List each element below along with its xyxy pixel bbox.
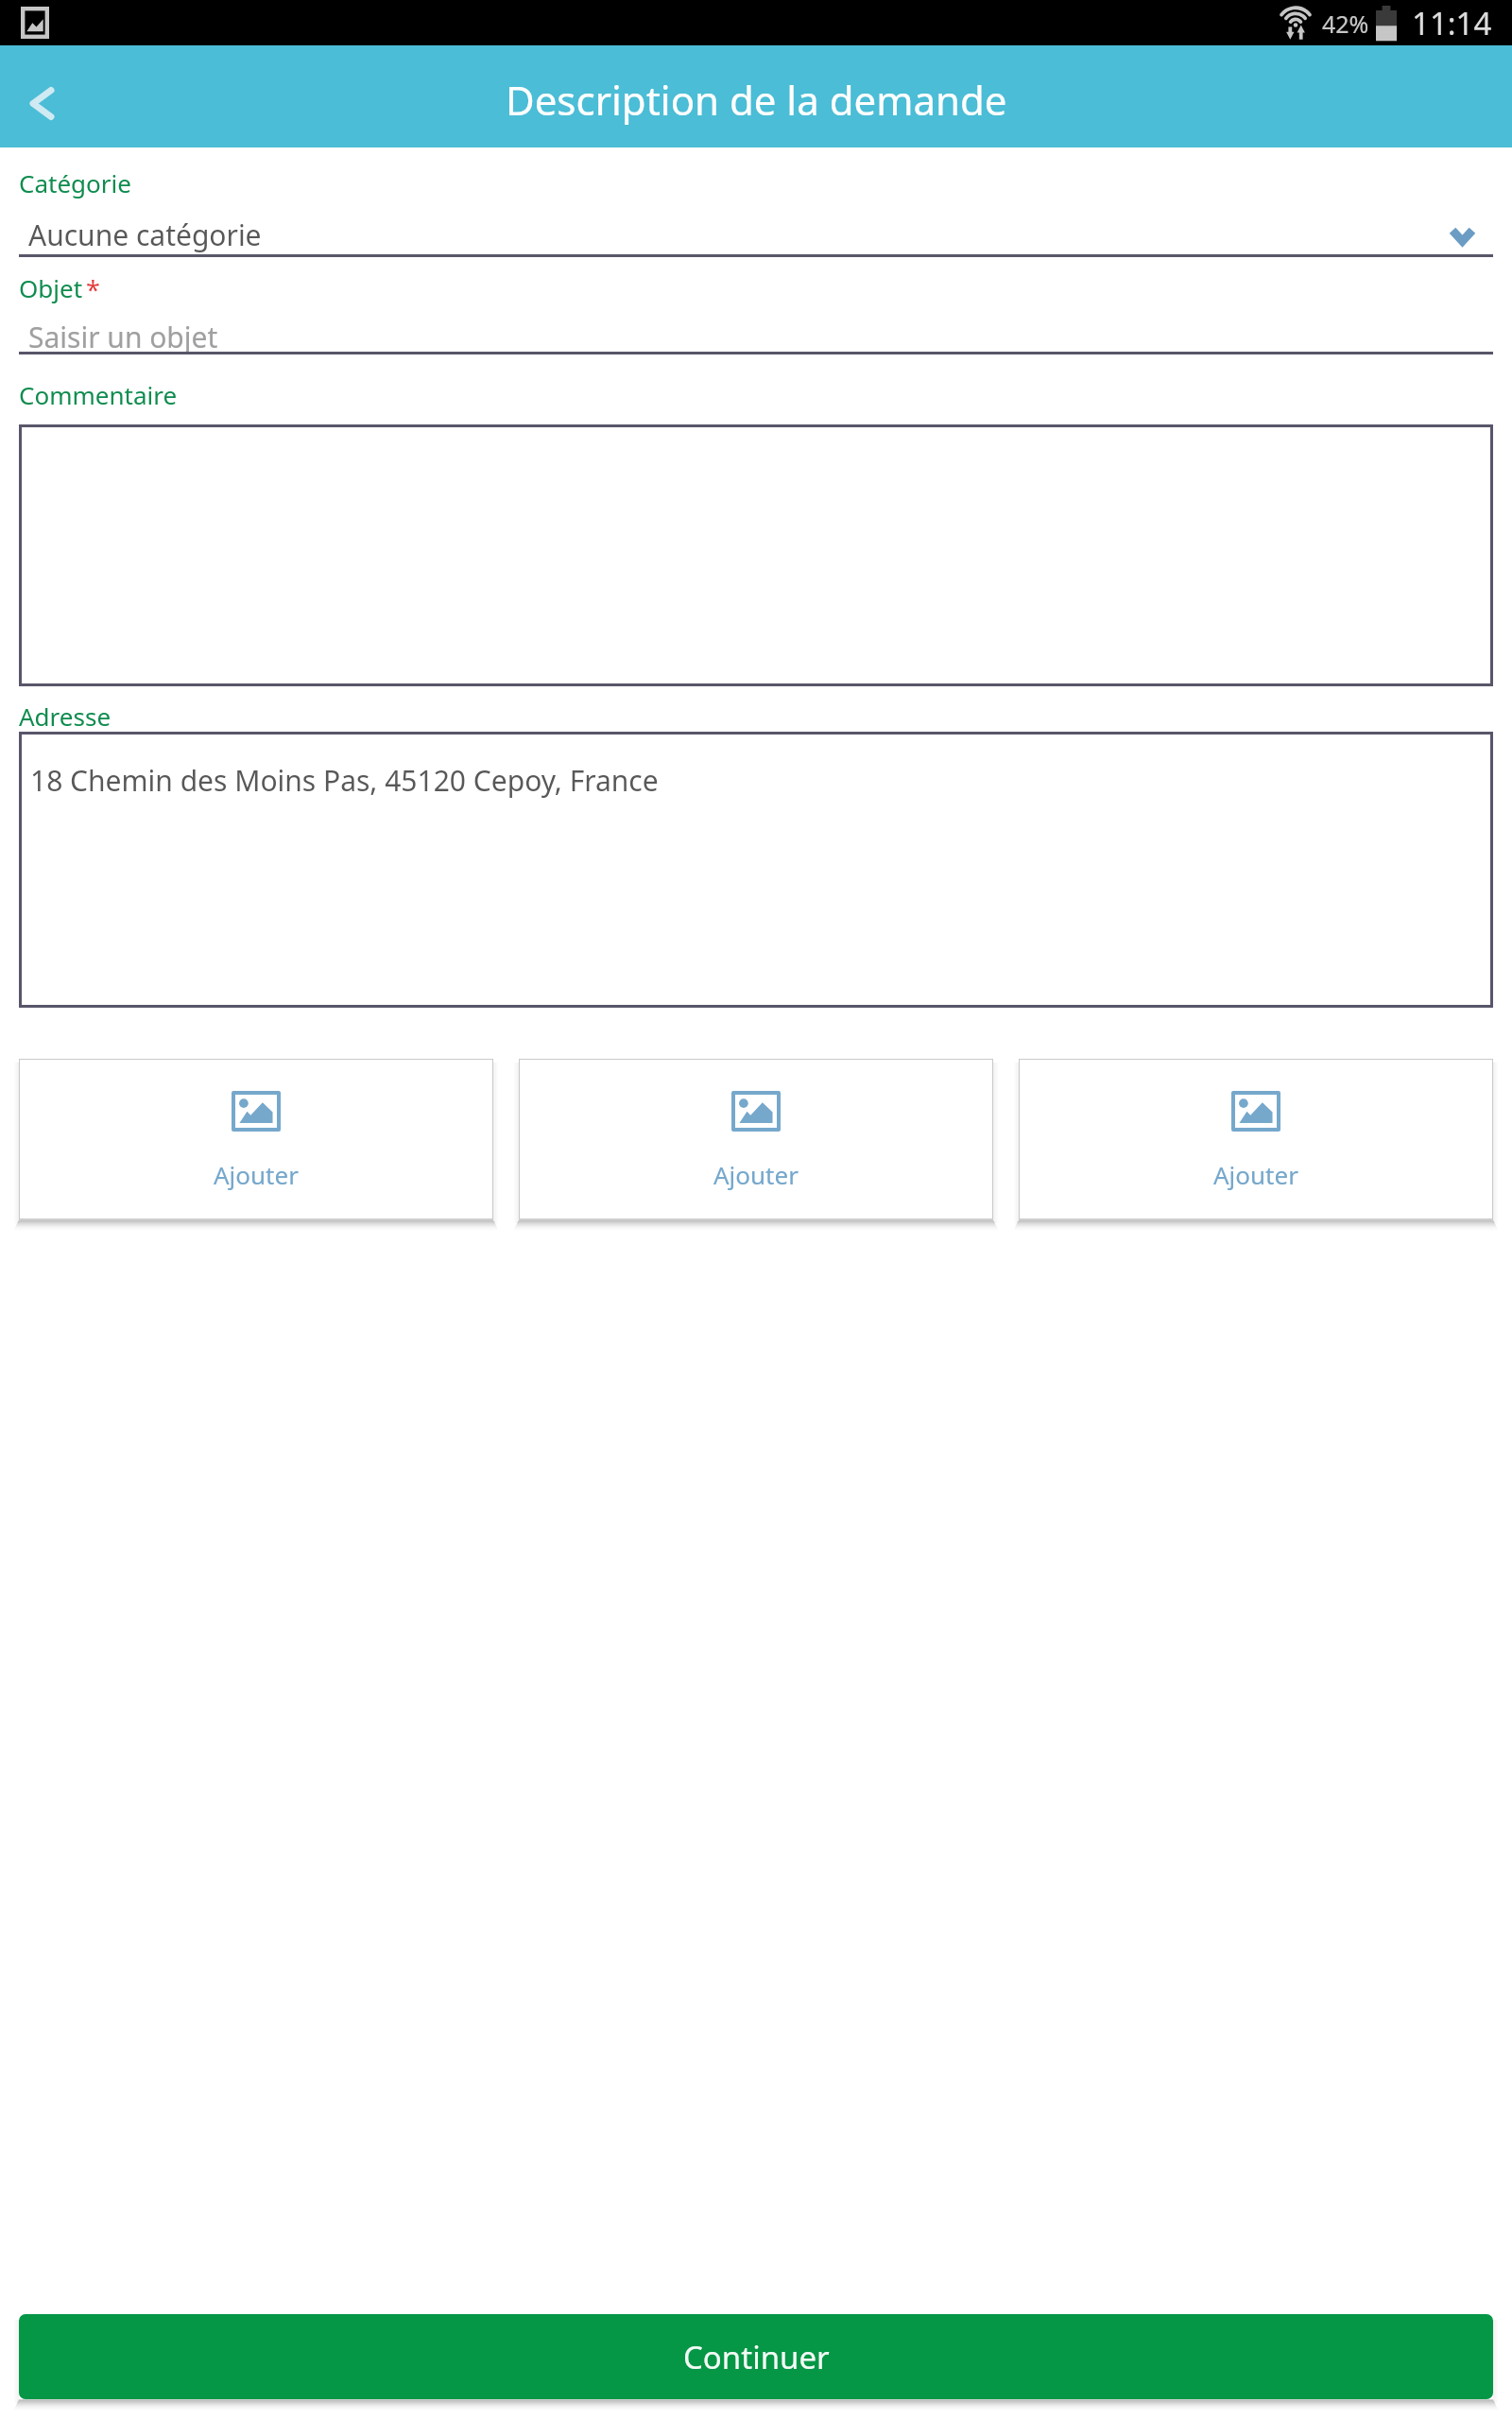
button[interactable]: Saisir un objet (0, 304, 1512, 354)
staticText: 42% (1322, 8, 1369, 40)
staticText: 18 Chemin des Moins Pas, 45120 Cepoy, Fr… (30, 761, 659, 800)
button[interactable]: Continuer (19, 2314, 1493, 2399)
staticText: 11:14 (1412, 2, 1492, 44)
button[interactable]: Ajouter (519, 1059, 993, 1219)
staticText: Commentaire (19, 378, 178, 411)
staticText: Ajouter (214, 1158, 299, 1191)
button[interactable]: Back (0, 45, 87, 147)
staticText: Ajouter (1213, 1158, 1298, 1191)
button[interactable]: Ajouter (19, 1059, 493, 1219)
staticText: Aucune catégorie (28, 216, 262, 254)
staticText: Adresse (19, 700, 112, 733)
button[interactable] (19, 424, 1493, 686)
staticText: Ajouter (713, 1158, 799, 1191)
staticText: Continuer (683, 2336, 830, 2378)
staticText: Catégorie (19, 166, 131, 199)
staticText: Objet (19, 271, 83, 304)
staticText: Saisir un objet (28, 318, 218, 356)
button[interactable]: 18 Chemin des Moins Pas, 45120 Cepoy, Fr… (19, 732, 1493, 1008)
staticText: * (86, 272, 100, 307)
staticText: Description de la demande (506, 73, 1007, 127)
button[interactable]: Ajouter (1019, 1059, 1493, 1219)
button[interactable]: Aucune catégorie (0, 206, 1512, 257)
